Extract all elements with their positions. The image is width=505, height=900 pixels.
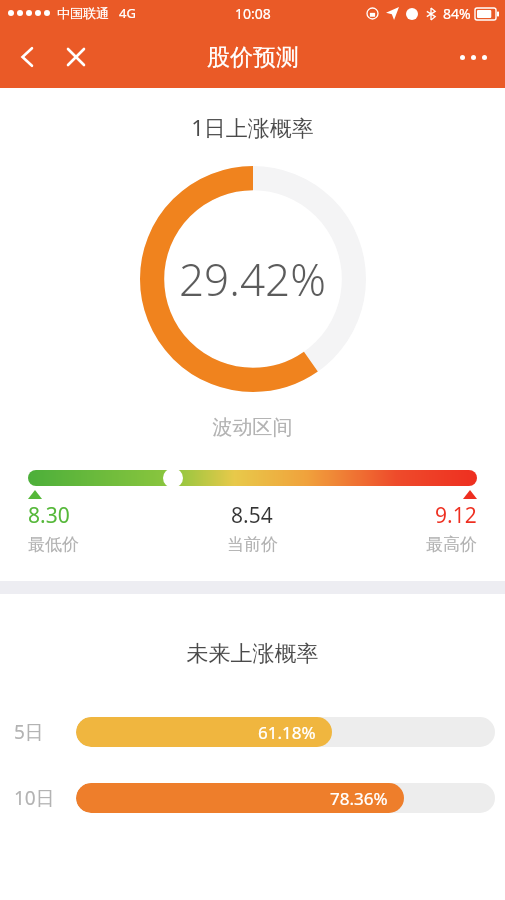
staticText: 4G xyxy=(119,4,136,22)
staticText: 波动区间 xyxy=(0,415,505,440)
staticText: 61.18% xyxy=(258,721,316,744)
staticText: 8.54 xyxy=(231,501,273,530)
staticText: 1日上涨概率 xyxy=(0,112,505,142)
staticText: 当前价 xyxy=(227,534,278,555)
button[interactable]: 5日 xyxy=(14,717,495,747)
staticText: 8.30 xyxy=(28,501,70,530)
staticText: 中国联通 xyxy=(57,5,109,21)
staticText: 9.12 xyxy=(435,501,477,530)
staticText: 未来上涨概率 xyxy=(0,640,505,668)
staticText: 5日 xyxy=(14,719,44,745)
staticText: 最高价 xyxy=(426,534,477,555)
staticText: 股价预测 xyxy=(207,43,299,72)
staticText: 84% xyxy=(443,4,471,23)
staticText: 29.42% xyxy=(179,249,326,309)
staticText: 10日 xyxy=(14,785,55,811)
button[interactable]: More options xyxy=(451,35,495,79)
button[interactable]: 10日 xyxy=(14,783,495,813)
staticText: 10:08 xyxy=(235,4,271,23)
staticText: 78.36% xyxy=(330,787,388,810)
button[interactable]: Back xyxy=(6,35,50,79)
button[interactable]: Close xyxy=(54,35,98,79)
staticText: 最低价 xyxy=(28,534,79,555)
